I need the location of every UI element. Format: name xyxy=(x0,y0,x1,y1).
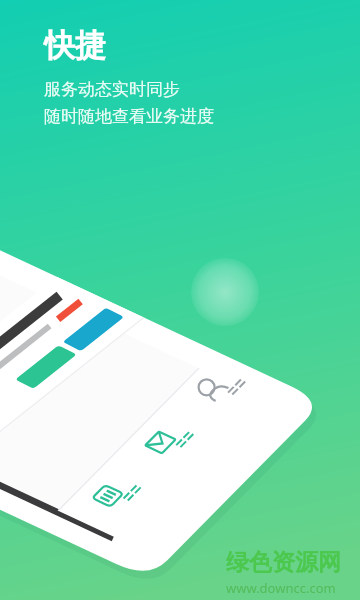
staticText: 随时随地查看业务进度 xyxy=(44,106,214,127)
staticText: 快捷 xyxy=(44,26,106,65)
staticText: 服务动态实时同步 xyxy=(44,79,180,100)
staticText: 绿色资源网 xyxy=(226,548,341,577)
staticText: www.downcc.com xyxy=(226,579,336,597)
